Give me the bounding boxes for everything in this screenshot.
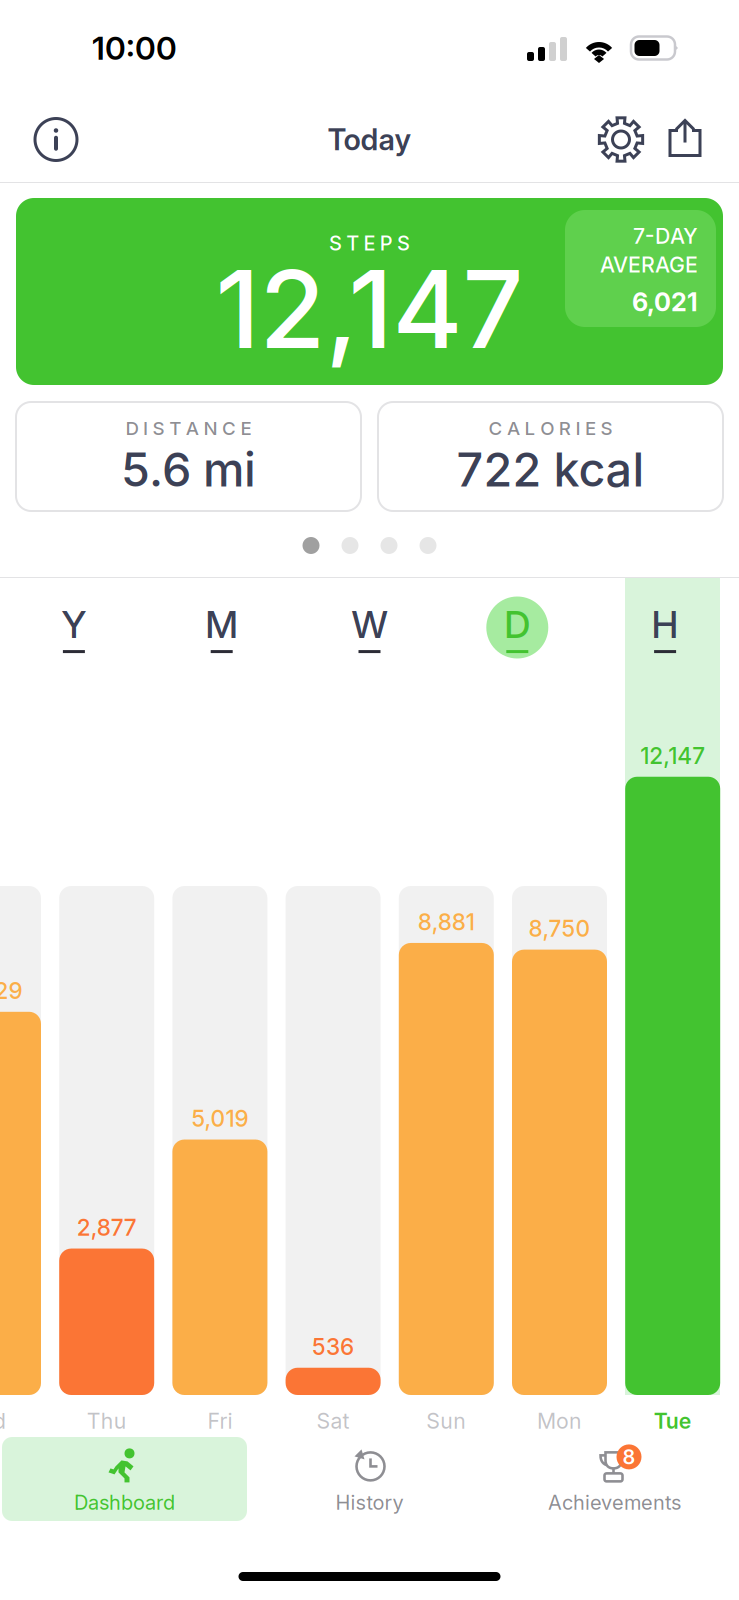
staticText: 2,877 <box>77 1214 137 1241</box>
staticText: Sat <box>317 1408 350 1434</box>
staticText: D <box>504 602 530 647</box>
staticText: Sun <box>426 1408 466 1434</box>
staticText: Thu <box>87 1408 127 1434</box>
staticText: M <box>205 602 238 647</box>
staticText: 5,019 <box>191 1105 248 1132</box>
staticText: N <box>203 417 217 440</box>
staticText: D <box>125 417 138 440</box>
button[interactable]: Share <box>657 108 713 170</box>
staticText: A <box>507 417 520 440</box>
staticText: S <box>397 231 410 255</box>
staticText: S <box>153 417 165 440</box>
staticText: I <box>143 417 148 440</box>
button[interactable]: D <box>443 580 591 675</box>
staticText: W <box>351 602 387 647</box>
staticText: AVERAGE <box>600 252 698 278</box>
staticText: E <box>585 417 596 440</box>
staticText: 8 <box>622 1445 635 1469</box>
staticText: Mon <box>537 1408 582 1434</box>
button[interactable]: M <box>148 580 296 675</box>
staticText: 6,021 <box>632 287 698 317</box>
staticText: O <box>540 417 554 440</box>
staticText: P <box>380 231 393 255</box>
staticText: C <box>488 417 502 440</box>
staticText: History <box>335 1490 403 1515</box>
button[interactable]: Dashboard <box>2 1437 247 1521</box>
staticText: Achievements <box>548 1490 681 1515</box>
staticText: E <box>241 417 252 440</box>
button[interactable]: Y <box>0 580 148 675</box>
staticText: Y <box>61 602 86 647</box>
staticText: 12,147 <box>640 742 705 769</box>
button[interactable]: H <box>591 580 739 675</box>
staticText: 10:00 <box>92 29 177 67</box>
staticText: 7,529 <box>0 977 22 1004</box>
staticText: I <box>575 417 580 440</box>
button[interactable]: About <box>28 108 84 170</box>
staticText: 8,881 <box>418 908 475 936</box>
staticText: T <box>346 231 359 255</box>
staticText: H <box>652 602 679 647</box>
staticText: E <box>363 231 375 255</box>
staticText: A <box>186 417 199 440</box>
button[interactable]: W <box>296 580 443 675</box>
staticText: T <box>169 417 181 440</box>
staticText: ed <box>0 1408 6 1434</box>
staticText: S <box>601 417 613 440</box>
staticText: C <box>222 417 236 440</box>
button[interactable]: History <box>247 1437 492 1521</box>
staticText: Today <box>327 122 411 157</box>
button[interactable]: 8 <box>492 1437 737 1521</box>
staticText: 722 kcal <box>456 441 644 498</box>
staticText: Fri <box>207 1408 232 1434</box>
staticText: 7-DAY <box>633 223 698 249</box>
staticText: Tue <box>654 1408 692 1434</box>
staticText: 536 <box>312 1333 354 1360</box>
staticText: 5.6 mi <box>121 441 256 498</box>
staticText: L <box>525 417 536 440</box>
staticText: Dashboard <box>74 1490 175 1515</box>
staticText: 12,147 <box>215 245 523 374</box>
staticText: S <box>329 231 342 255</box>
staticText: R <box>559 417 571 440</box>
button[interactable]: Settings <box>593 108 649 170</box>
staticText: 8,750 <box>528 915 590 942</box>
